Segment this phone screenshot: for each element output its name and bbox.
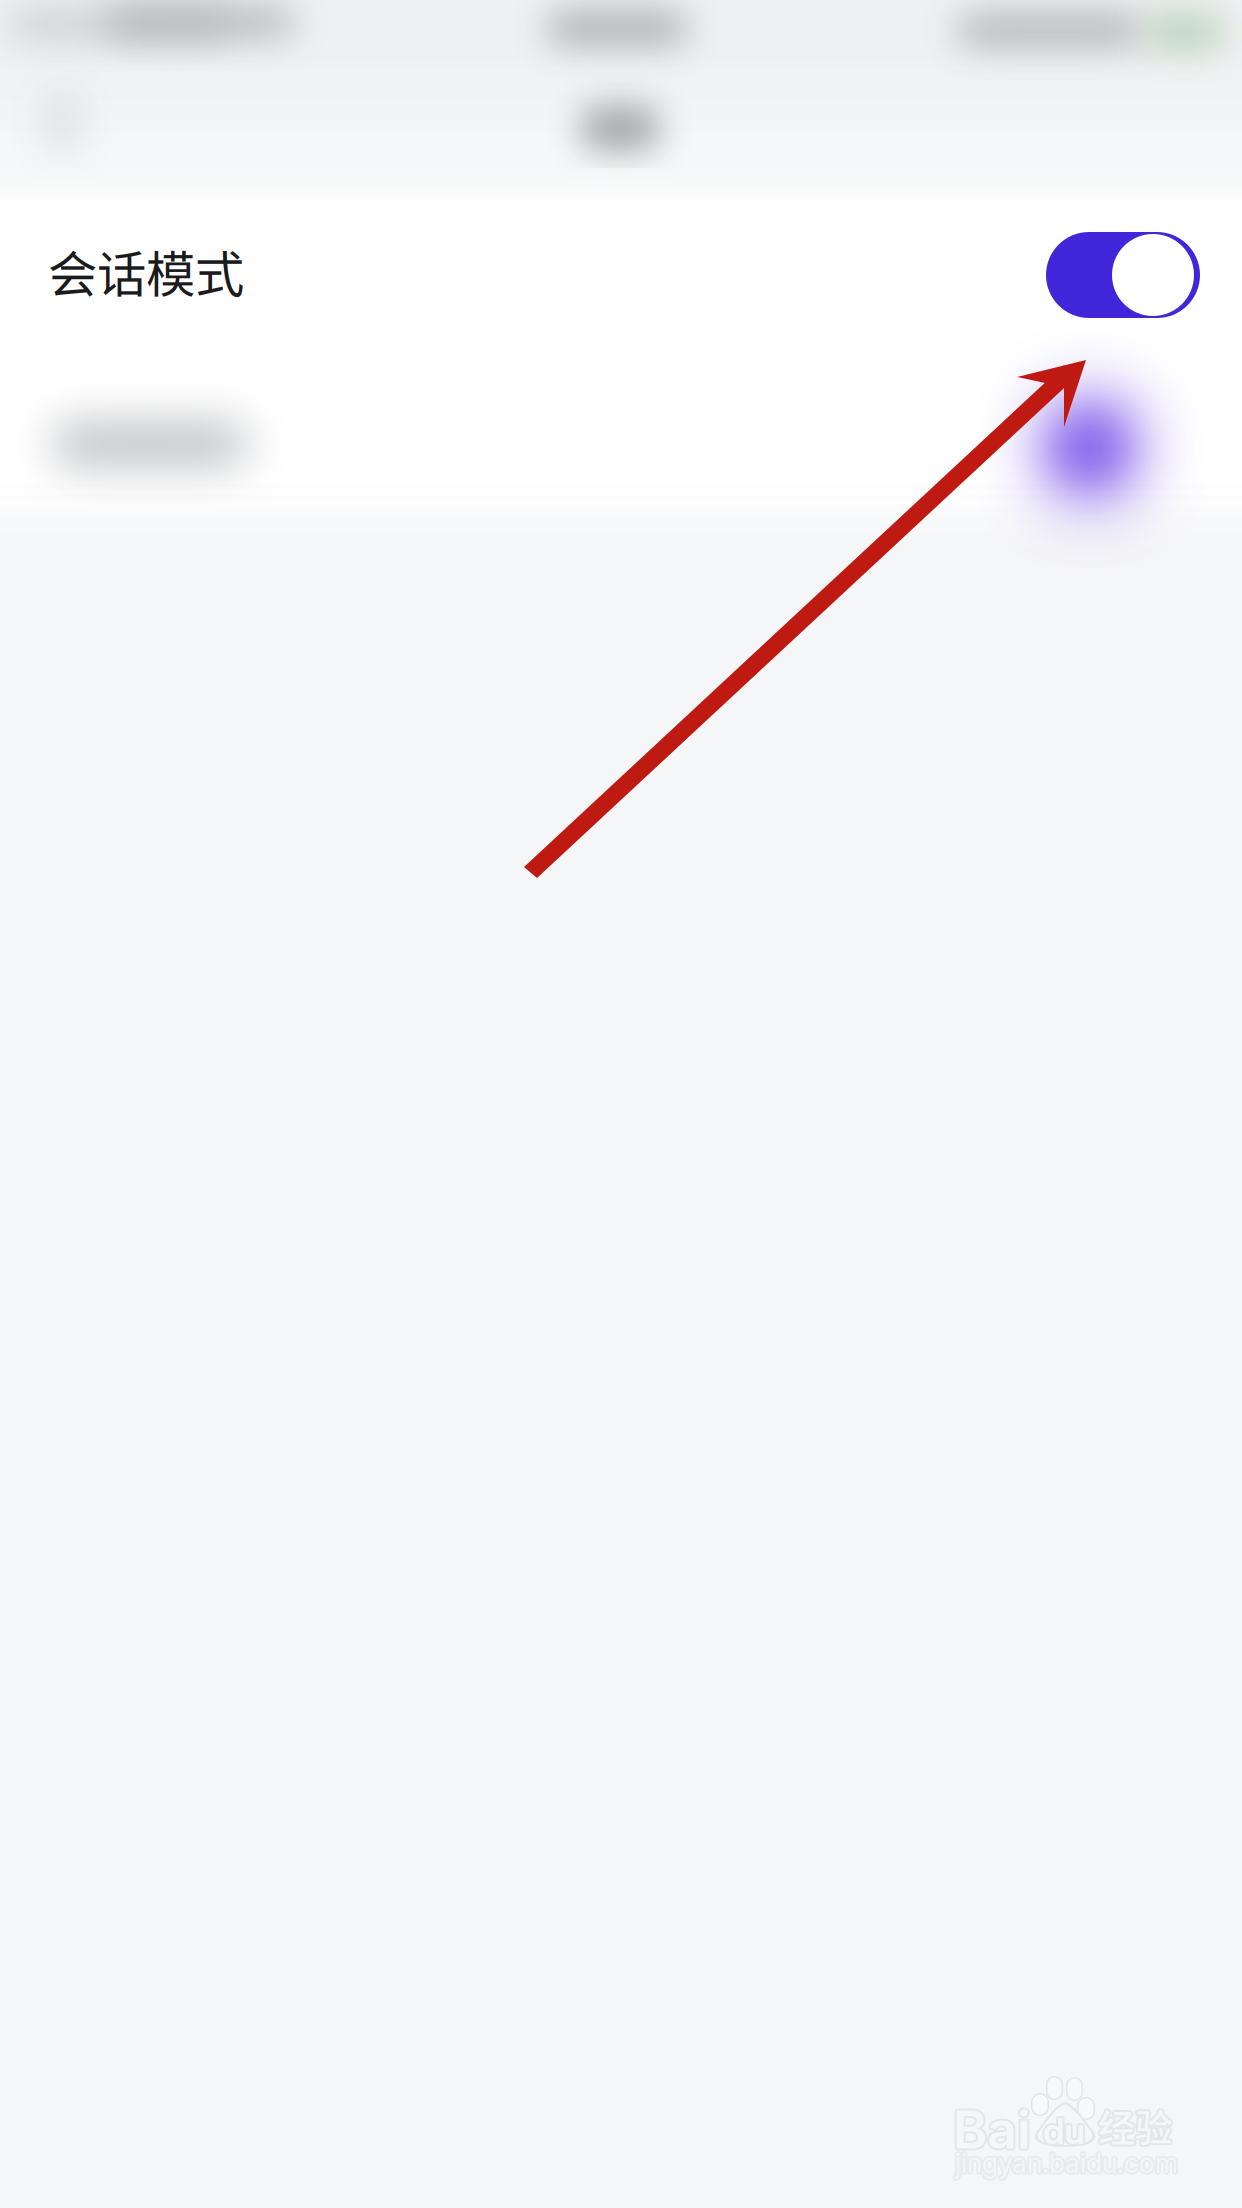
button[interactable]: 会话模式 [0, 200, 1242, 484]
staticText: 经验 [1098, 2101, 1172, 2155]
staticText: jingyan.baidu.com [957, 2147, 1180, 2179]
staticText: jingyan.baidu.com [953, 2147, 1176, 2179]
staticText: jingyan.baidu.com [955, 2145, 1178, 2177]
staticText: du [1042, 2110, 1084, 2154]
staticText: jingyan.baidu.com [956, 2148, 1179, 2181]
staticText: du [1044, 2110, 1086, 2154]
staticText: 经验 [1100, 2099, 1174, 2153]
staticText: Bai [951, 2098, 1029, 2161]
staticText: Bai [952, 2097, 1030, 2159]
staticText: 经验 [1096, 2099, 1170, 2153]
staticText: Bai [954, 2097, 1032, 2159]
staticText: du [1043, 2107, 1085, 2151]
staticText: 经验 [1098, 2099, 1172, 2153]
staticText: 经验 [1097, 2098, 1171, 2152]
staticText: du [1043, 2109, 1085, 2153]
staticText: Bai [952, 2099, 1030, 2162]
staticText: jingyan.baidu.com [954, 2148, 1177, 2181]
staticText: Bai [954, 2099, 1032, 2162]
staticText: jingyan.baidu.com [956, 2146, 1179, 2178]
staticText: 经验 [1097, 2100, 1171, 2154]
staticText: jingyan.baidu.com [955, 2147, 1178, 2179]
staticText: Bai [953, 2098, 1031, 2161]
staticText: du [1044, 2108, 1086, 2151]
staticText: du [1045, 2109, 1087, 2153]
staticText: Bai [953, 2096, 1031, 2159]
staticText: 经验 [1098, 2097, 1172, 2151]
staticText: du [1042, 2108, 1084, 2151]
staticText: 会话模式 [48, 235, 244, 306]
staticText: Bai [955, 2098, 1033, 2161]
staticText: jingyan.baidu.com [954, 2146, 1177, 2178]
staticText: du [1041, 2109, 1083, 2153]
staticText: jingyan.baidu.com [955, 2149, 1178, 2181]
staticText: 经验 [1099, 2100, 1173, 2154]
staticText: Bai [953, 2100, 1031, 2163]
staticText: du [1043, 2111, 1085, 2155]
staticText: 经验 [1099, 2098, 1173, 2152]
